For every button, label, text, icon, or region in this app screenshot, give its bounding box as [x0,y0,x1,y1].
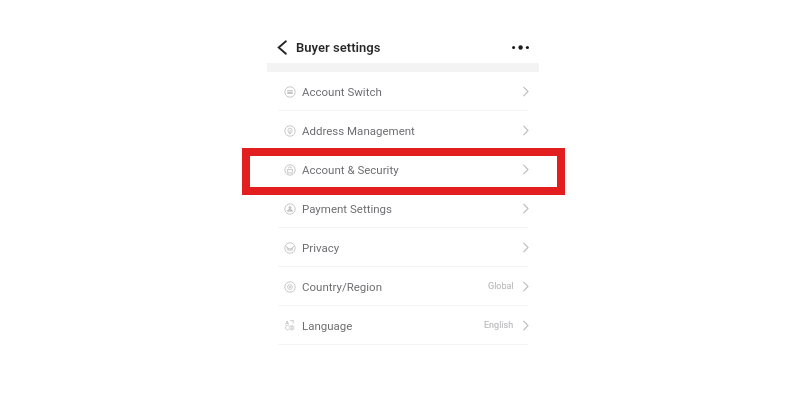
button[interactable]: Account Switch [267,72,539,111]
staticText: English [484,320,514,331]
button[interactable]: Back [272,36,295,59]
button[interactable]: More options [509,36,532,59]
staticText: Account & Security [302,163,399,176]
staticText: Account Switch [302,85,382,98]
button[interactable]: Payment Settings [267,189,539,228]
staticText: Privacy [302,241,340,254]
staticText: Language [302,319,353,332]
button[interactable]: Language [267,306,539,345]
button[interactable]: Address Management [267,111,539,150]
button[interactable]: Privacy [267,228,539,267]
staticText: Address Management [302,124,415,137]
staticText: Buyer settings [296,40,381,55]
button[interactable]: Account & Security [267,150,539,189]
staticText: Payment Settings [302,202,392,215]
staticText: Country/Region [302,280,383,293]
staticText: Global [488,281,514,292]
button[interactable]: Country/Region [267,267,539,306]
